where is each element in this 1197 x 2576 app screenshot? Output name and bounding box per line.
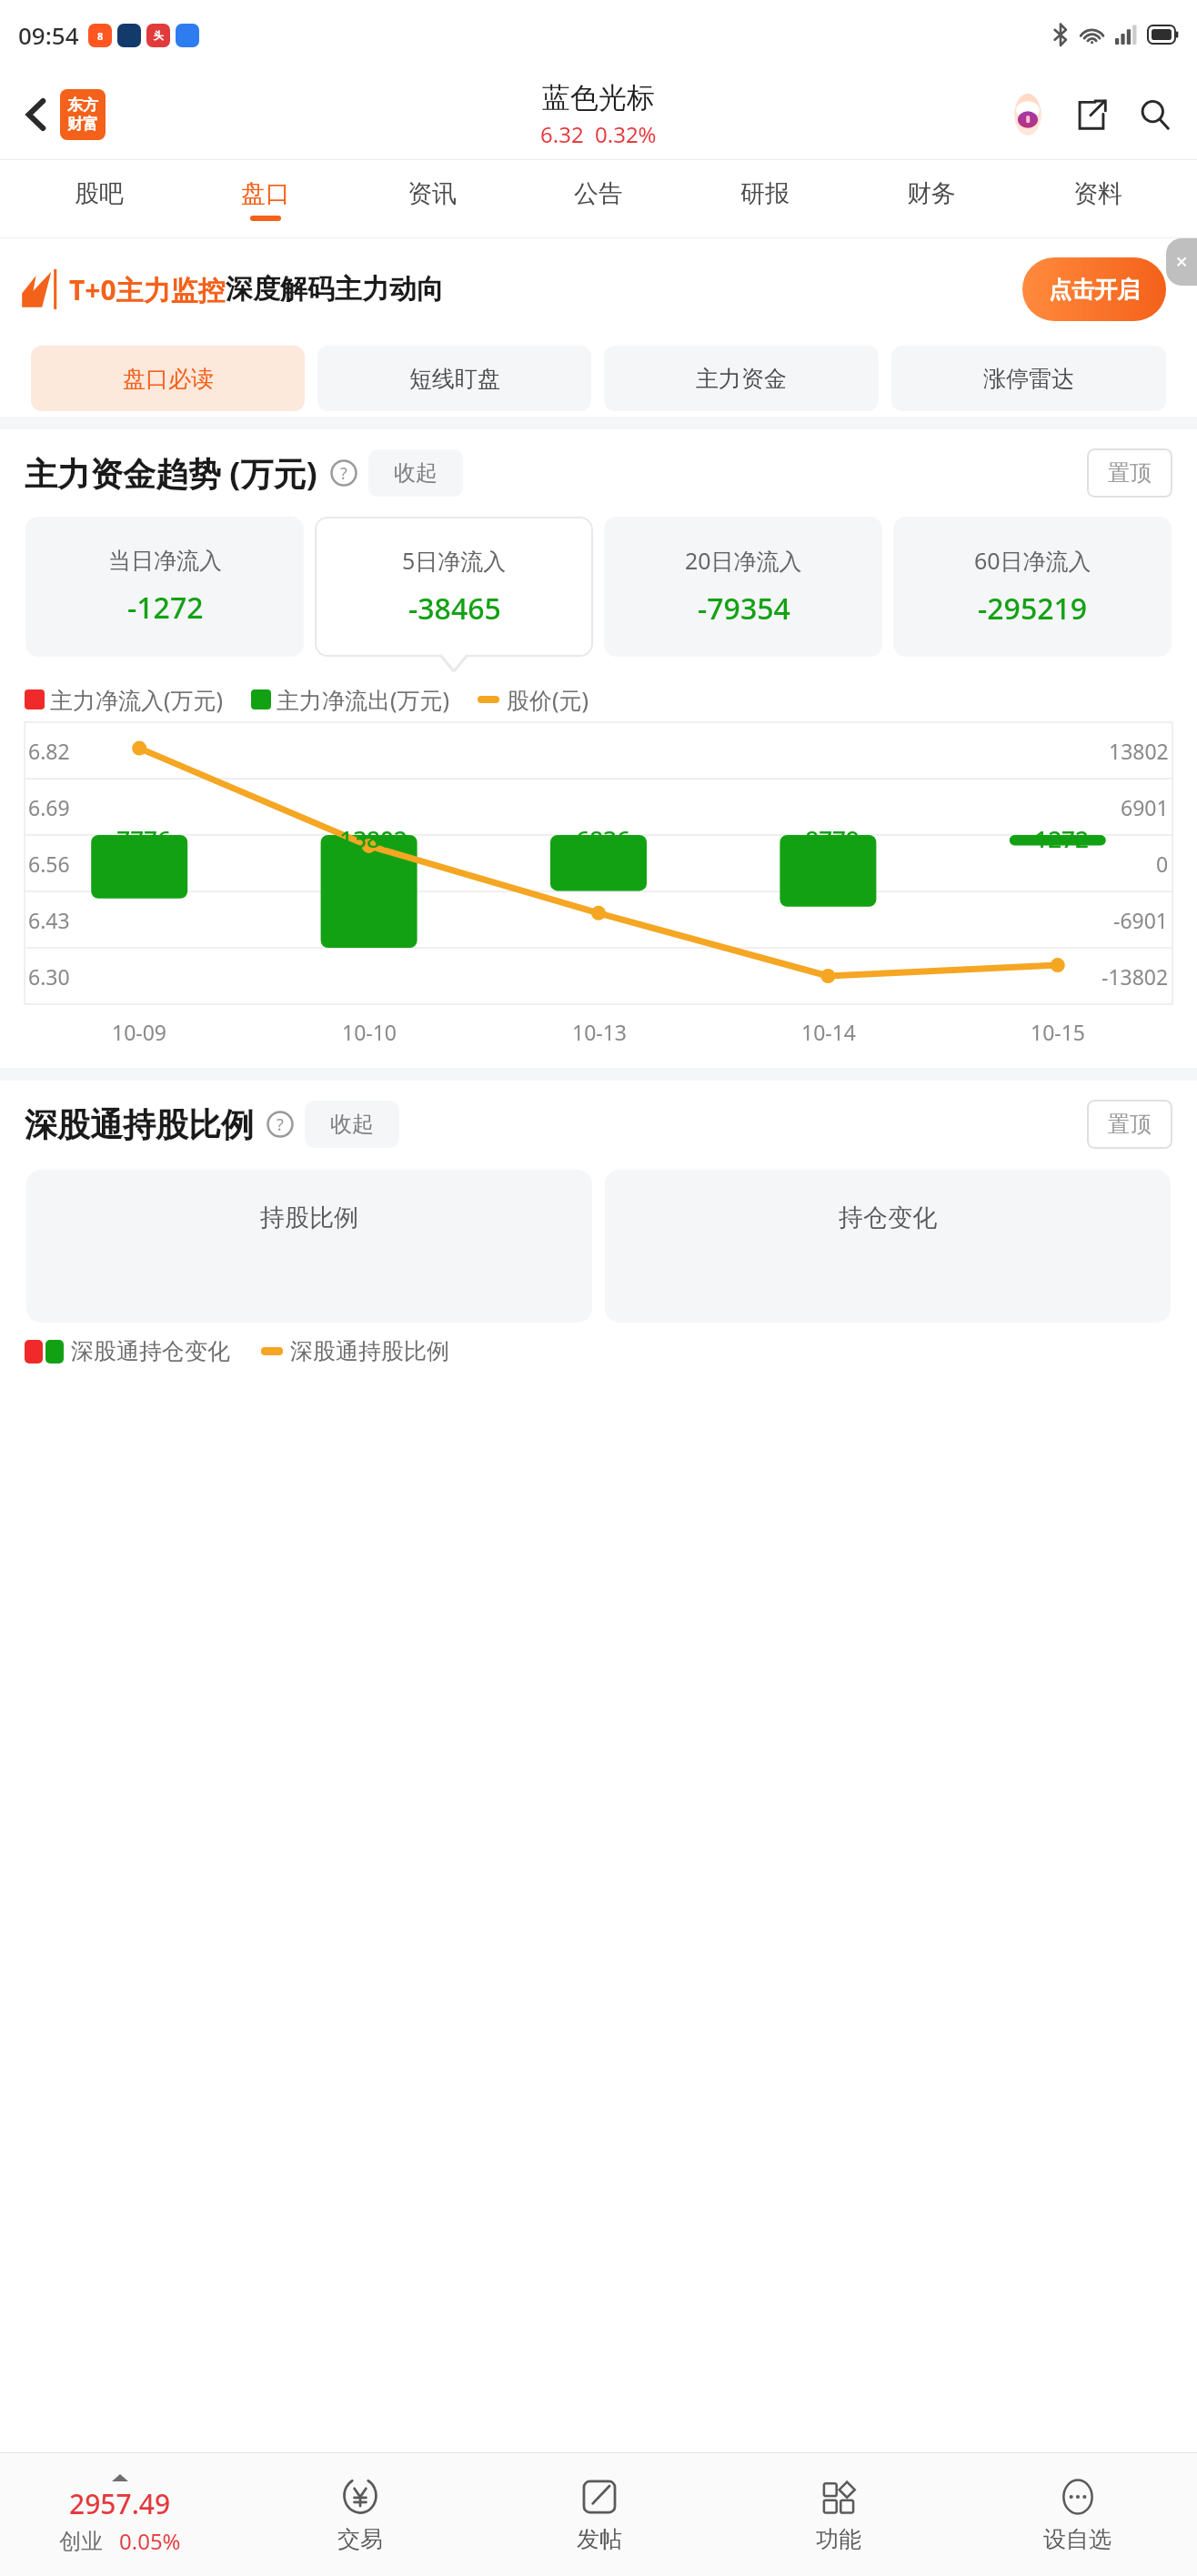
button[interactable]: 财务 bbox=[848, 160, 1014, 238]
staticText: 深股通持股比例 bbox=[290, 1337, 449, 1365]
staticText: 功能 bbox=[816, 2525, 861, 2553]
button[interactable]: 收起 bbox=[368, 449, 463, 497]
staticText: -1272 bbox=[127, 588, 204, 628]
staticText: -79354 bbox=[698, 589, 790, 629]
button[interactable]: 分享 bbox=[1066, 89, 1117, 140]
button[interactable]: 股吧 bbox=[16, 160, 182, 238]
staticText: 10-10 bbox=[342, 1018, 397, 1046]
staticText: 公告 bbox=[574, 178, 623, 209]
staticText: -295219 bbox=[978, 589, 1088, 629]
staticText: -13802 bbox=[332, 822, 407, 854]
staticText: 6.56 bbox=[28, 850, 70, 878]
staticText: ? bbox=[340, 462, 347, 485]
staticText: 深度解码主力动向 bbox=[226, 272, 444, 307]
staticText: 持仓变化 bbox=[839, 1202, 937, 1233]
button[interactable]: 关闭 bbox=[1166, 238, 1197, 286]
staticText: 5日净流入 bbox=[402, 545, 507, 576]
staticText: 6901 bbox=[1121, 793, 1169, 821]
staticText: 财务 bbox=[907, 178, 956, 209]
staticText: 深股通持股比例 bbox=[25, 1104, 254, 1145]
staticText: 6.32 bbox=[540, 119, 584, 149]
staticText: 研报 bbox=[740, 178, 790, 209]
button[interactable]: 持仓变化 bbox=[605, 1170, 1171, 1323]
staticText: 0 bbox=[1156, 850, 1169, 878]
staticText: 深股通持仓变化 bbox=[71, 1337, 230, 1365]
staticText: -1272 bbox=[1027, 822, 1089, 854]
staticText: 资讯 bbox=[407, 178, 457, 209]
button[interactable]: 60日净流入 bbox=[893, 517, 1172, 657]
button[interactable]: 资料 bbox=[1014, 160, 1181, 238]
button[interactable]: 搜索 bbox=[1130, 89, 1181, 140]
staticText: T+0主力监控 bbox=[69, 271, 226, 308]
staticText: 2957.49 bbox=[69, 2485, 171, 2522]
staticText: 财富 bbox=[67, 115, 98, 134]
staticText: 09:54 bbox=[18, 19, 79, 51]
button[interactable]: 资讯 bbox=[348, 160, 515, 238]
staticText: 涨停雷达 bbox=[983, 365, 1074, 393]
staticText: -6901 bbox=[1113, 906, 1169, 934]
staticText: 6.30 bbox=[28, 962, 70, 991]
staticText: 发帖 bbox=[577, 2525, 622, 2553]
button[interactable]: 涨停雷达 bbox=[891, 346, 1166, 411]
button[interactable]: 持股比例 bbox=[26, 1170, 592, 1323]
staticText: 13802 bbox=[1109, 737, 1169, 765]
staticText: 主力净流出(万元) bbox=[277, 684, 450, 715]
staticText: 创业 bbox=[59, 2528, 103, 2555]
staticText: 资料 bbox=[1073, 178, 1122, 209]
staticText: 6.82 bbox=[28, 737, 70, 765]
button[interactable]: 公告 bbox=[515, 160, 681, 238]
staticText: 当日净流入 bbox=[108, 547, 222, 575]
staticText: 10-13 bbox=[572, 1018, 628, 1046]
button[interactable]: 盘口 bbox=[182, 160, 348, 238]
button[interactable]: 置顶 bbox=[1087, 448, 1172, 498]
button[interactable]: 20日净流入 bbox=[604, 517, 882, 657]
button[interactable]: 研报 bbox=[681, 160, 848, 238]
staticText: 10-14 bbox=[801, 1018, 857, 1046]
staticText: ✕ bbox=[1175, 253, 1189, 271]
staticText: 短线盯盘 bbox=[409, 365, 500, 393]
button[interactable]: 点击开启 bbox=[1022, 257, 1166, 321]
staticText: 主力资金趋势 (万元) bbox=[25, 451, 317, 496]
button[interactable]: 盘口必读 bbox=[31, 346, 305, 411]
staticText: -38465 bbox=[408, 589, 501, 629]
staticText: 0.32% bbox=[595, 119, 657, 149]
staticText: 10-15 bbox=[1031, 1018, 1086, 1046]
button[interactable]: 设自选 bbox=[958, 2453, 1197, 2576]
staticText: 6.43 bbox=[28, 906, 70, 934]
staticText: 6.69 bbox=[28, 793, 70, 821]
staticText: -13802 bbox=[1101, 962, 1169, 991]
button[interactable]: 说明 bbox=[328, 458, 359, 488]
staticText: 置顶 bbox=[1108, 1111, 1152, 1138]
staticText: 60日净流入 bbox=[974, 545, 1091, 576]
staticText: 10-09 bbox=[112, 1018, 167, 1046]
staticText: ? bbox=[277, 1113, 284, 1136]
button[interactable]: 发帖 bbox=[479, 2453, 719, 2576]
staticText: -6836 bbox=[568, 822, 630, 854]
button[interactable]: 收起 bbox=[305, 1101, 399, 1148]
button[interactable]: 说明 bbox=[265, 1109, 296, 1140]
staticText: 收起 bbox=[330, 1111, 374, 1138]
button[interactable]: 5日净流入 bbox=[315, 517, 593, 657]
staticText: 置顶 bbox=[1108, 459, 1152, 487]
staticText: -7776 bbox=[109, 822, 171, 854]
staticText: 0.05% bbox=[119, 2526, 181, 2556]
button[interactable]: 返回 bbox=[13, 91, 60, 138]
button[interactable]: 东方财富 bbox=[60, 89, 106, 140]
staticText: 交易 bbox=[337, 2525, 383, 2553]
button[interactable]: 置顶 bbox=[1087, 1100, 1172, 1149]
staticText: 点击开启 bbox=[1049, 276, 1140, 304]
staticText: 盘口必读 bbox=[123, 365, 214, 393]
button[interactable]: 主力资金 bbox=[604, 346, 879, 411]
button[interactable]: 短线盯盘 bbox=[317, 346, 591, 411]
button[interactable]: 交易 bbox=[240, 2453, 479, 2576]
button[interactable]: 2957.49 bbox=[0, 2453, 240, 2576]
staticText: 主力资金 bbox=[696, 365, 787, 393]
button[interactable]: 当日净流入 bbox=[25, 517, 304, 657]
staticText: 蓝色光标 bbox=[542, 80, 655, 116]
staticText: 收起 bbox=[394, 459, 438, 487]
staticText: 头 bbox=[154, 29, 164, 42]
button[interactable]: AI助手 bbox=[1002, 89, 1053, 140]
staticText: 股价(元) bbox=[507, 684, 589, 715]
button[interactable]: 功能 bbox=[719, 2453, 958, 2576]
staticText: 东方 bbox=[67, 96, 98, 115]
